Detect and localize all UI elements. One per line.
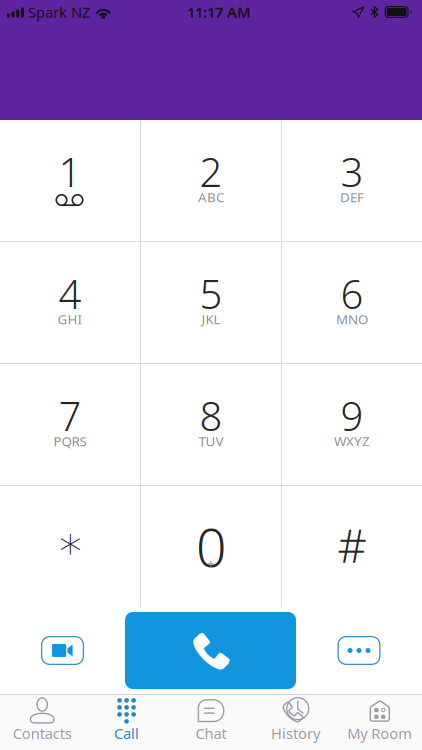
button[interactable]: Call	[125, 612, 296, 689]
staticText: Contacts	[13, 724, 72, 743]
button[interactable]: 3	[282, 120, 422, 241]
button[interactable]: 6	[282, 242, 422, 363]
button[interactable]: 8	[141, 364, 281, 485]
button[interactable]: My Room	[338, 692, 422, 750]
button[interactable]: Contacts	[0, 692, 84, 750]
button[interactable]: 4	[0, 242, 140, 363]
staticText: 7	[58, 389, 81, 442]
staticText: JKL	[201, 310, 220, 328]
staticText: 9	[340, 389, 363, 442]
button[interactable]: 2	[141, 120, 281, 241]
button[interactable]: History	[253, 692, 338, 750]
staticText: 1	[58, 145, 81, 198]
staticText: DEF	[340, 188, 364, 206]
staticText: 0	[196, 511, 226, 582]
button[interactable]: 0	[141, 486, 281, 607]
staticText: Call	[114, 724, 139, 743]
button[interactable]: Chat	[169, 692, 253, 750]
staticText: MNO	[336, 310, 368, 328]
staticText: My Room	[347, 724, 412, 743]
button[interactable]: 9	[282, 364, 422, 485]
staticText: History	[271, 724, 320, 743]
button[interactable]: More	[296, 612, 422, 689]
staticText: 5	[199, 267, 222, 320]
staticText: 11:17 AM	[187, 2, 251, 22]
staticText: 3	[340, 145, 363, 198]
staticText: 2	[199, 145, 222, 198]
staticText: PQRS	[53, 432, 86, 450]
staticText: Chat	[195, 724, 226, 743]
button[interactable]: Call	[84, 692, 169, 750]
staticText: +	[207, 554, 215, 572]
button[interactable]: Video call	[0, 612, 125, 689]
button[interactable]: ∗	[0, 486, 140, 607]
staticText: 6	[340, 267, 363, 320]
staticText: WXYZ	[334, 432, 370, 450]
staticText: GHI	[57, 310, 82, 328]
staticText: #	[337, 515, 366, 575]
staticText: TUV	[198, 432, 223, 450]
button[interactable]: #	[282, 486, 422, 607]
staticText: 4	[58, 267, 81, 320]
staticText: 8	[199, 389, 222, 442]
staticText: Spark NZ	[28, 2, 90, 22]
button[interactable]: 5	[141, 242, 281, 363]
button[interactable]: 7	[0, 364, 140, 485]
staticText: ABC	[198, 188, 224, 206]
staticText: ∗	[56, 517, 84, 568]
button[interactable]: 1	[0, 120, 140, 241]
